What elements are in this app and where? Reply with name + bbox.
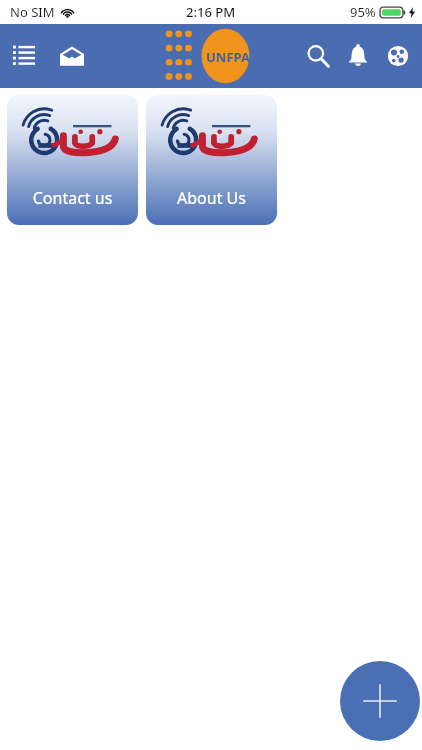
staticText: 95%: [350, 3, 376, 21]
staticText: No SIM: [10, 3, 55, 21]
button[interactable]: Add: [340, 661, 420, 741]
staticText: UNFPA: [206, 48, 250, 66]
button[interactable]: Menu: [0, 32, 48, 80]
staticText: 2:16 PM: [186, 3, 236, 21]
button[interactable]: Messages: [48, 32, 96, 80]
button[interactable]: Search: [298, 36, 338, 76]
button[interactable]: Contact us: [7, 95, 138, 225]
button[interactable]: Language: [378, 36, 418, 76]
button[interactable]: Notifications: [338, 36, 378, 76]
staticText: Contact us: [7, 187, 138, 209]
button[interactable]: About Us: [146, 95, 277, 225]
staticText: About Us: [146, 187, 277, 209]
button[interactable]: UNFPA: [162, 27, 254, 85]
